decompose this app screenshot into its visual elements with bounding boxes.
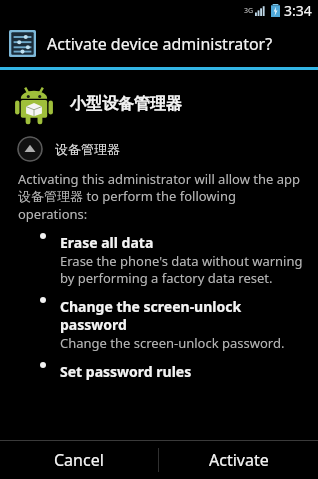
staticText: Cancel xyxy=(54,449,104,471)
staticText: Set password rules xyxy=(60,362,192,381)
staticText: Erase all data xyxy=(60,233,154,252)
button[interactable]: Activate xyxy=(159,441,318,479)
staticText: 小型设备管理器 xyxy=(70,94,182,114)
staticText: Change the screen-unlock password. xyxy=(60,334,285,352)
staticText: Activate xyxy=(209,449,269,471)
button[interactable]: Cancel xyxy=(0,441,158,479)
other: Collapse xyxy=(17,136,43,162)
staticText: Change the screen-unlock password xyxy=(60,297,304,334)
staticText: Activating this administrator will allow… xyxy=(18,170,302,223)
staticText: 设备管理器 xyxy=(55,141,120,157)
button[interactable]: Collapse xyxy=(0,134,318,164)
staticText: 3G xyxy=(244,6,254,16)
staticText: 3:34 xyxy=(284,1,312,20)
staticText: Erase the phone's data without warning b… xyxy=(60,252,304,287)
staticText: Activate device administrator? xyxy=(47,33,273,55)
